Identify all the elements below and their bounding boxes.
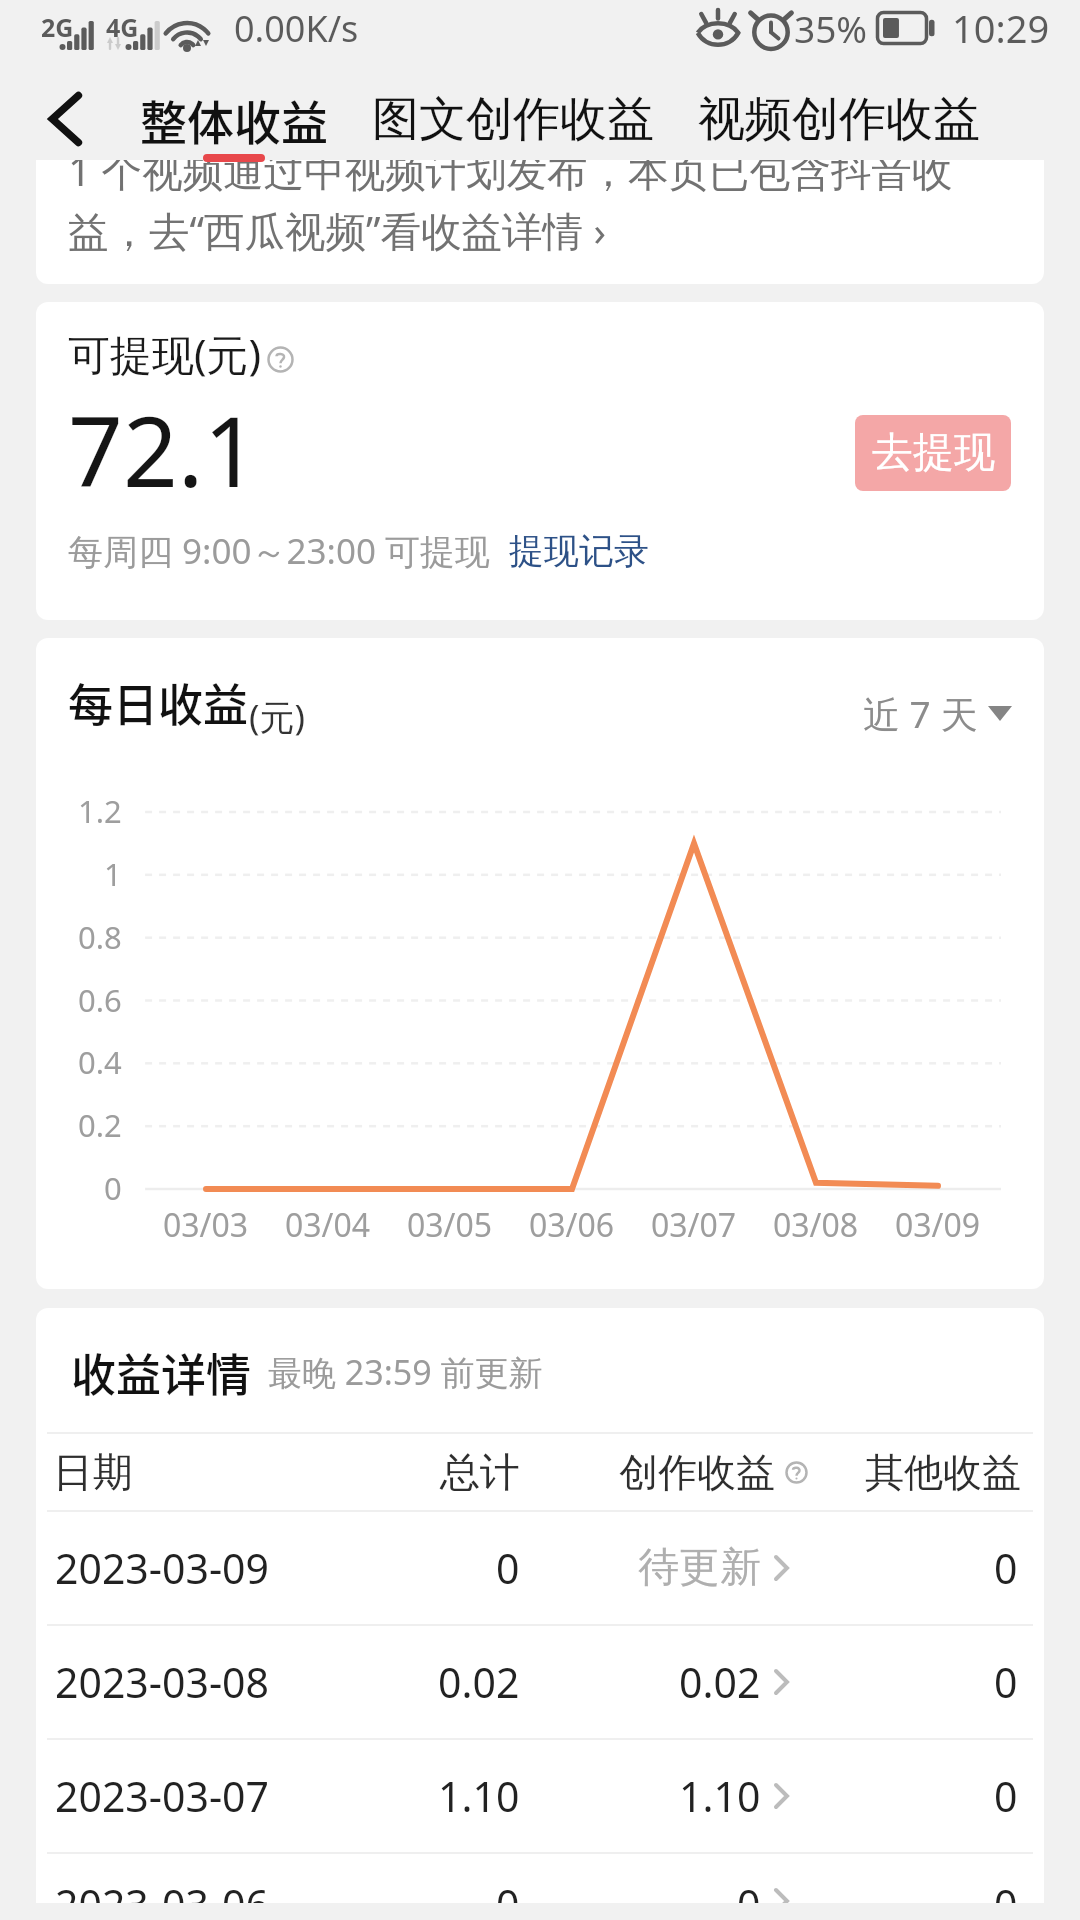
- staticText: 图文创作收益: [372, 90, 654, 149]
- staticText: 0: [737, 1876, 761, 1903]
- staticText: 2G: [41, 10, 74, 44]
- staticText: 03/08: [773, 1203, 859, 1247]
- staticText: 1.10: [679, 1768, 761, 1824]
- staticText: 2023-03-09: [55, 1540, 270, 1596]
- button[interactable]: 2023-03-07: [36, 1740, 1044, 1852]
- staticText: 03/05: [407, 1203, 493, 1247]
- button[interactable]: 图文创作收益: [372, 78, 654, 160]
- staticText: 每周四 9:00～23:00 可提现: [68, 527, 491, 575]
- staticText: 2023-03-07: [55, 1768, 270, 1824]
- button[interactable]: Back: [24, 78, 108, 160]
- staticText: 0: [104, 1167, 122, 1209]
- staticText: 其他收益: [865, 1448, 1021, 1497]
- staticText: 72.1: [68, 384, 259, 515]
- staticText: 0.4: [78, 1041, 122, 1083]
- staticText: 03/09: [895, 1203, 981, 1247]
- button[interactable]: 提现记录: [509, 529, 649, 573]
- button[interactable]: 1 个视频通过中视频计划发布，本页已包含抖音收益，去“西瓜视频”看收益详情 ›: [36, 160, 1044, 284]
- staticText: 03/03: [163, 1203, 249, 1247]
- staticText: 1: [104, 853, 122, 895]
- staticText: 最晚 23:59 前更新: [268, 1349, 543, 1395]
- staticText: 0: [496, 1876, 520, 1903]
- button[interactable]: 近 7 天: [863, 692, 1012, 743]
- staticText: 整体收益: [140, 85, 328, 153]
- button[interactable]: 2023-03-08: [36, 1626, 1044, 1738]
- staticText: 视频创作收益: [698, 90, 980, 149]
- button[interactable]: 整体收益: [140, 78, 328, 160]
- staticText: 收益详情: [71, 1340, 252, 1405]
- staticText: 每日收益: [68, 670, 249, 735]
- staticText: 1 个视频通过中视频计划发布，本页已包含抖音收益，去“西瓜视频”看收益详情 ›: [68, 160, 1014, 258]
- staticText: 0: [994, 1654, 1018, 1710]
- staticText: 1.10: [438, 1768, 520, 1824]
- staticText: 2023-03-08: [55, 1654, 270, 1710]
- staticText: 0.02: [438, 1654, 520, 1710]
- button[interactable]: 视频创作收益: [698, 78, 980, 160]
- staticText: 10:29: [952, 2, 1050, 54]
- staticText: 近 7 天: [863, 688, 978, 739]
- staticText: 0: [994, 1540, 1018, 1596]
- staticText: 总计: [440, 1447, 520, 1497]
- staticText: 创作收益: [619, 1448, 775, 1497]
- staticText: 4G: [106, 10, 139, 44]
- staticText: 1.2: [78, 790, 122, 832]
- staticText: 0.2: [78, 1104, 122, 1146]
- staticText: 03/07: [651, 1203, 737, 1247]
- staticText: 0.6: [78, 979, 122, 1021]
- staticText: 03/04: [285, 1203, 371, 1247]
- button[interactable]: 2023-03-06: [36, 1854, 1044, 1903]
- button[interactable]: 去提现: [855, 415, 1011, 491]
- staticText: 日期: [53, 1447, 133, 1497]
- staticText: 去提现: [872, 427, 995, 479]
- staticText: 可提现(元): [68, 325, 262, 382]
- button[interactable]: 2023-03-09: [36, 1512, 1044, 1624]
- staticText: 03/06: [529, 1203, 615, 1247]
- staticText: (元): [249, 693, 306, 741]
- staticText: 0.8: [78, 916, 122, 958]
- staticText: 0: [496, 1540, 520, 1596]
- staticText: 0: [994, 1768, 1018, 1824]
- staticText: 0: [994, 1876, 1018, 1903]
- staticText: 待更新: [638, 1542, 761, 1594]
- staticText: 0.00K/s: [234, 4, 359, 53]
- staticText: 2023-03-06: [55, 1876, 270, 1903]
- staticText: 35%: [794, 3, 868, 53]
- staticText: 0.02: [679, 1654, 761, 1710]
